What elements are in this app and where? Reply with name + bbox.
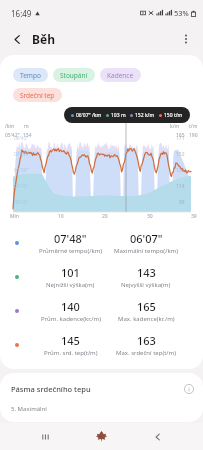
staticText: k/m [170,123,180,130]
button[interactable]: Srdeční tep [13,88,62,102]
staticText: Nejvyšší výška(m) [121,281,171,289]
staticText: 53% [174,8,189,18]
staticText: 165 [176,132,185,139]
staticText: Min [10,213,19,220]
staticText: 152 [176,151,185,158]
button[interactable]: Back [6,28,28,50]
staticText: 06'07" /km [76,112,102,119]
staticText: Pásma srdečního tepu [11,384,91,394]
button[interactable]: Recent apps [34,423,56,450]
staticText: Běh [32,31,55,47]
staticText: Tempo [20,71,41,80]
button[interactable]: Stoupání [53,68,95,82]
staticText: Max. kadence(kr./m) [118,315,175,323]
staticText: 39 [191,213,197,220]
staticText: 152 k/m [135,112,155,119]
button[interactable]: Tempo [13,68,48,82]
staticText: m [24,123,29,130]
staticText: 08'30" [14,199,29,206]
staticText: /km [5,123,15,130]
staticText: t/m [189,123,198,130]
staticText: Stoupání [60,71,88,80]
staticText: 145 [61,333,80,348]
staticText: 20 [102,213,108,220]
staticText: 114 [176,183,185,190]
staticText: 150 t/m [164,112,183,119]
staticText: 140 [61,299,80,314]
staticText: 06'07" [130,231,163,246]
staticText: Prům. kadence(kr./m) [41,315,101,323]
staticText: 95 [179,199,185,206]
staticText: Prům. srd. tep(t/m) [44,349,98,357]
staticText: 133 [176,167,185,174]
button[interactable]: Kadence [100,68,141,82]
staticText: 05'42" [5,132,20,139]
staticText: Srdeční tep [20,91,55,100]
staticText: 165 [137,299,156,314]
staticText: Maximální tempo(/km) [114,247,178,255]
staticText: 171 [176,135,185,142]
staticText: 103 m [111,112,126,119]
staticText: 07'30" [14,167,29,174]
staticText: Nejnižší výška(m) [46,281,95,289]
other: Info [182,382,196,396]
staticText: Max. srdeční tep(t/m) [116,349,177,357]
staticText: Kadence [107,71,134,80]
button[interactable]: More options [175,28,197,50]
staticText: 07'48" [54,231,87,246]
staticText: 10 [58,213,64,220]
staticText: 5. Maximální [11,405,47,413]
staticText: 143 [137,265,156,280]
button[interactable]: Home [90,423,112,450]
staticText: 06'42" [14,135,29,142]
staticText: 07'00" [14,151,29,158]
staticText: 163 [137,333,156,348]
staticText: 30 [147,213,153,220]
staticText: 101 [61,265,80,280]
button[interactable]: Pásma srdečního tepu [0,379,203,399]
staticText: Průměrné tempo(/km) [39,247,103,255]
button[interactable]: Back [147,423,169,450]
staticText: 154 [23,132,32,139]
staticText: 190 [189,132,198,139]
staticText: 08'00" [14,183,29,190]
staticText: 16:49 [11,8,32,19]
